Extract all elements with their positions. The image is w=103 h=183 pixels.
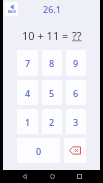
staticText: ??	[72, 28, 82, 43]
button[interactable]: 0	[17, 138, 60, 163]
button[interactable]: Back	[5, 2, 18, 16]
button[interactable]: 5	[42, 80, 62, 105]
staticText: 8	[49, 57, 55, 69]
button[interactable]: Recents	[72, 170, 86, 183]
button[interactable]: 1	[17, 109, 38, 134]
button[interactable]: Home	[45, 170, 59, 183]
button[interactable]: 2	[42, 109, 62, 134]
button[interactable]: Delete	[64, 138, 86, 163]
button[interactable]: 3	[66, 109, 86, 134]
staticText: BACK	[8, 10, 16, 14]
button[interactable]: 4	[17, 80, 38, 105]
staticText: 7	[25, 57, 31, 69]
button[interactable]: 9	[66, 50, 86, 76]
staticText: 26.1	[43, 3, 61, 15]
staticText: 3	[73, 116, 79, 128]
staticText: 2	[49, 116, 55, 128]
staticText: 1	[25, 116, 31, 128]
staticText: 5	[49, 87, 55, 99]
button[interactable]: 8	[42, 50, 62, 76]
button[interactable]: 7	[17, 50, 38, 76]
button[interactable]: Back	[17, 170, 31, 183]
staticText: 0	[36, 145, 42, 157]
staticText: 4	[25, 87, 31, 99]
staticText: 10 + 11 =	[22, 28, 72, 43]
staticText: 9	[73, 57, 79, 69]
button[interactable]: 6	[66, 80, 86, 105]
staticText: 6	[73, 87, 79, 99]
